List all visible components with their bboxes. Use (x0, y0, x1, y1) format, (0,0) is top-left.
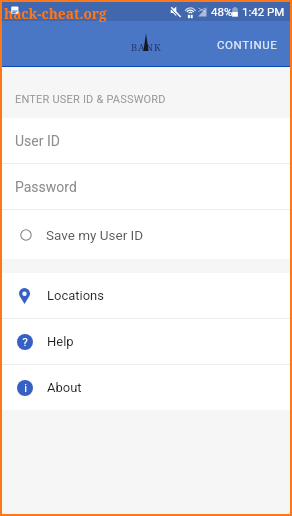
staticText: hack-cheat.org (4, 4, 107, 23)
button[interactable]: User ID (2, 118, 290, 163)
button[interactable]: Save my User ID (2, 210, 290, 259)
staticText: i (24, 382, 27, 395)
staticText: ? (22, 336, 28, 349)
staticText: User ID (15, 133, 60, 149)
button[interactable]: i (2, 365, 290, 410)
staticText: 1:42 PM (242, 5, 285, 18)
staticText: Help (47, 334, 74, 349)
staticText: Password (15, 179, 77, 195)
staticText: 48% (211, 5, 233, 18)
staticText: CONTINUE (217, 38, 278, 51)
staticText: BANK (131, 41, 162, 54)
button[interactable]: ? (2, 319, 290, 364)
button[interactable]: CONTINUE (209, 30, 286, 59)
staticText: ENTER USER ID & PASSWORD (15, 93, 166, 106)
staticText: About (47, 380, 82, 395)
other: Locations (19, 288, 30, 304)
button[interactable]: Password (2, 164, 290, 209)
button[interactable]: Locations (2, 273, 290, 318)
staticText: Locations (47, 288, 105, 303)
staticText: Save my User ID (46, 227, 144, 243)
